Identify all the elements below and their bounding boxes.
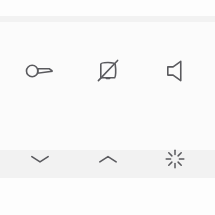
button[interactable]: Unlock door	[9, 40, 71, 102]
button[interactable]: Mute notifications	[77, 40, 139, 102]
button[interactable]: Lower blinds	[9, 128, 71, 190]
button[interactable]: Brightness	[144, 128, 206, 190]
button[interactable]: Raise blinds	[77, 128, 139, 190]
button[interactable]: Volume	[144, 40, 206, 102]
